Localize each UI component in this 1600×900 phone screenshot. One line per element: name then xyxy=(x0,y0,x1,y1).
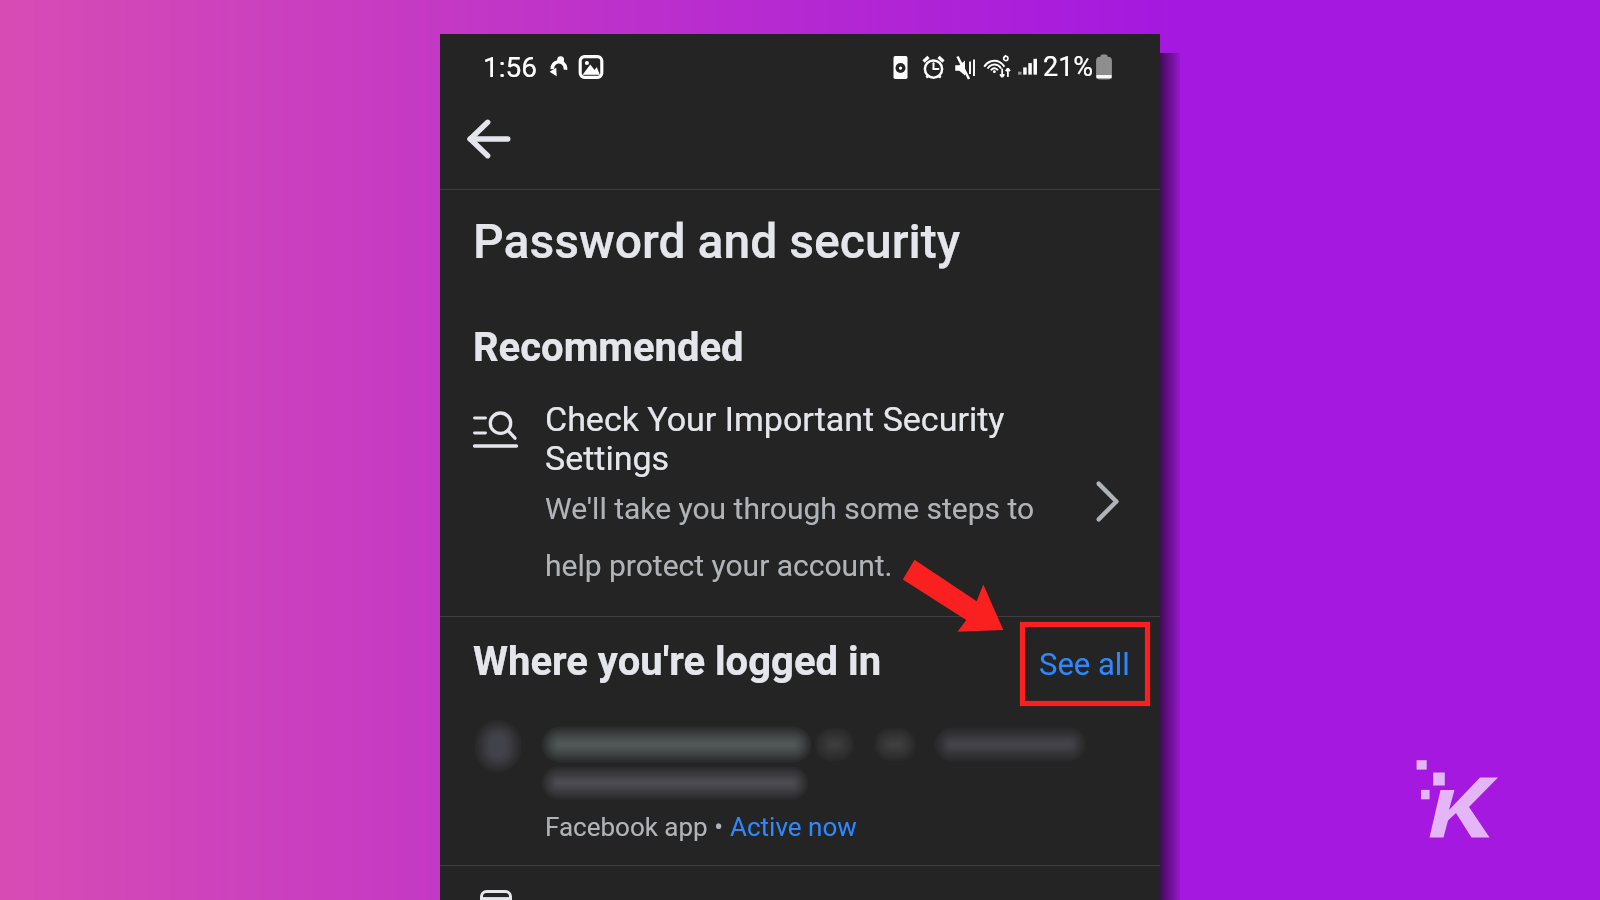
staticText: Check Your Important Security Settings xyxy=(545,400,1045,478)
staticText: We'll take you through some steps to hel… xyxy=(545,474,1045,588)
button[interactable]: Back xyxy=(457,107,521,171)
staticText: Recommended xyxy=(473,325,744,371)
button[interactable]: Check Your Important Security Settings xyxy=(440,379,1160,615)
button[interactable]: See all xyxy=(1018,622,1151,706)
button[interactable] xyxy=(440,866,1160,900)
staticText: 1:56 xyxy=(483,51,537,84)
staticText: Password and security xyxy=(473,214,961,270)
button[interactable]: Facebook app • xyxy=(440,714,1160,894)
staticText: Active now xyxy=(730,811,857,842)
staticText: Facebook app • xyxy=(545,811,730,842)
staticText: See all xyxy=(1039,646,1130,682)
staticText: 21% xyxy=(1043,51,1094,83)
staticText: Where you're logged in xyxy=(473,639,882,685)
